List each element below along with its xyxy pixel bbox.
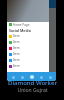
button[interactable]: Tab 0 [10,74,16,80]
staticText: Item [13,52,20,56]
staticText: Union Gujrat [17,87,48,94]
staticText: Item [13,46,20,50]
button[interactable]: Tab 1 [19,74,25,80]
staticText: Item [13,58,20,62]
staticText: Home Page [13,23,30,27]
staticText: Item [13,40,20,44]
button[interactable]: Item [8,33,49,39]
staticText: Item [13,34,20,38]
button[interactable]: Item [8,63,49,69]
button[interactable]: Tab 4 [47,74,53,80]
button[interactable]: Home Page [8,22,49,27]
button[interactable]: Item [8,39,49,45]
button[interactable]: Tab 2 [29,74,35,80]
staticText: Item [13,64,20,68]
button[interactable]: Item [8,51,49,57]
staticText: Diamond Worker [8,79,57,87]
staticText: Social Media [9,28,31,33]
button[interactable]: Item [8,45,49,51]
button[interactable]: Tab 3 [38,74,44,80]
button[interactable]: Item [8,57,49,63]
